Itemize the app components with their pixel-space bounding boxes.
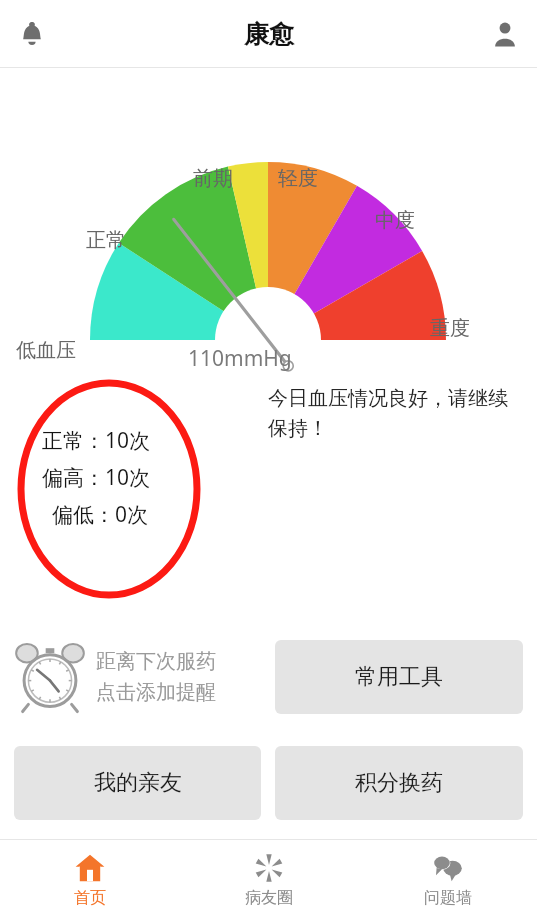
staticText: 前期 (193, 166, 233, 191)
button[interactable]: 常用工具 (275, 640, 523, 714)
button[interactable]: Notifications (6, 8, 58, 60)
button[interactable]: Profile (479, 8, 531, 60)
button[interactable]: 首页 (0, 840, 179, 920)
staticText: 110mmHg (188, 344, 292, 373)
staticText: 低血压 (16, 338, 76, 363)
staticText: 正常：10次 (42, 426, 151, 455)
staticText: 常用工具 (355, 663, 443, 691)
staticText: 重度 (430, 316, 470, 341)
staticText: 正常 (86, 228, 126, 253)
button[interactable]: 距离下次服药 (14, 640, 261, 714)
button[interactable]: 病友圈 (179, 840, 358, 920)
staticText: 问题墙 (424, 888, 472, 908)
staticText: 偏高：10次 (42, 463, 151, 492)
staticText: 今日血压情况良好，请继续保持！ (268, 386, 518, 441)
staticText: 病友圈 (245, 888, 293, 908)
staticText: 轻度 (278, 166, 318, 191)
staticText: 积分换药 (355, 769, 443, 797)
staticText: 距离下次服药 (96, 649, 216, 674)
staticText: 点击添加提醒 (96, 680, 216, 705)
staticText: 我的亲友 (94, 769, 182, 797)
staticText: 中度 (375, 208, 415, 233)
staticText: 首页 (74, 888, 106, 908)
button[interactable]: 积分换药 (275, 746, 523, 820)
staticText: 康愈 (244, 19, 294, 50)
button[interactable]: 我的亲友 (14, 746, 261, 820)
staticText: 偏低：0次 (52, 500, 149, 529)
button[interactable]: 问题墙 (358, 840, 537, 920)
